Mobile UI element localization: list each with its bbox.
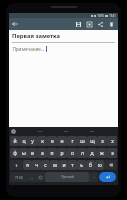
button[interactable]: Gboard menu [11, 129, 16, 134]
staticText: щ [90, 138, 95, 145]
button[interactable]: р [57, 148, 67, 158]
button[interactable]: ц [19, 136, 28, 146]
staticText: з [101, 138, 104, 145]
button[interactable]: я [23, 160, 32, 170]
button[interactable]: б [86, 160, 95, 170]
button[interactable]: . [89, 172, 98, 182]
button[interactable]: ш [77, 136, 87, 146]
staticText: а [41, 150, 44, 157]
staticText: ш [80, 138, 85, 145]
staticText: н [60, 138, 64, 145]
button[interactable]: Enter [99, 172, 116, 182]
staticText: 19:41 [109, 14, 116, 18]
button[interactable]: ы [19, 148, 28, 158]
button[interactable]: Примечание... [12, 46, 115, 52]
staticText: э [111, 150, 114, 157]
button[interactable]: Save as [84, 19, 95, 30]
staticText: Русский [61, 175, 74, 179]
button[interactable]: Shift [10, 160, 23, 170]
staticText: е [51, 138, 54, 145]
button[interactable]: Emoji [36, 172, 45, 182]
staticText: г [71, 138, 74, 145]
staticText: к [41, 138, 44, 145]
button[interactable]: г [67, 136, 77, 146]
staticText: ы [22, 150, 26, 157]
staticText: п [50, 150, 54, 157]
button[interactable]: Русский [45, 172, 89, 182]
button[interactable]: Save [73, 19, 84, 30]
button[interactable]: а [37, 148, 47, 158]
button[interactable]: з [97, 136, 107, 146]
button[interactable]: н [57, 136, 67, 146]
button[interactable]: д [87, 148, 97, 158]
button[interactable]: о [67, 148, 77, 158]
button[interactable]: , [27, 172, 36, 182]
staticText: ю [98, 162, 102, 169]
staticText: р [60, 150, 64, 157]
button[interactable]: щ [87, 136, 97, 146]
staticText: й [13, 138, 17, 145]
staticText: о [71, 150, 74, 157]
button[interactable]: у [28, 136, 37, 146]
staticText: ь [80, 162, 83, 169]
staticText: Первая заметка [12, 32, 60, 40]
staticText: ч [35, 162, 38, 169]
button[interactable]: в [28, 148, 37, 158]
staticText: и [62, 162, 66, 169]
button[interactable]: э [107, 148, 117, 158]
button[interactable]: Backspace [104, 160, 117, 170]
staticText: х [111, 138, 114, 145]
button[interactable]: ?123 [10, 172, 27, 182]
staticText: 100% [97, 14, 104, 18]
staticText: л [81, 150, 84, 157]
button[interactable]: м [50, 160, 59, 170]
staticText: ?123 [15, 175, 23, 180]
button[interactable]: т [68, 160, 77, 170]
button[interactable]: Back [10, 19, 20, 29]
staticText: Примечание... [12, 46, 45, 52]
button[interactable]: ч [32, 160, 41, 170]
staticText: т [71, 162, 74, 169]
staticText: м [53, 162, 57, 169]
staticText: в [31, 150, 34, 157]
button[interactable]: к [37, 136, 47, 146]
button[interactable]: Первая заметка [12, 32, 115, 40]
staticText: ц [22, 138, 26, 145]
staticText: я [26, 162, 29, 169]
button[interactable]: п [47, 148, 57, 158]
staticText: , [31, 174, 33, 180]
button[interactable]: ь [77, 160, 86, 170]
button[interactable]: с [41, 160, 50, 170]
staticText: ж [100, 150, 104, 157]
staticText: . [93, 174, 95, 180]
button[interactable]: х [107, 136, 117, 146]
button[interactable]: л [77, 148, 87, 158]
button[interactable]: ж [97, 148, 107, 158]
button[interactable]: и [59, 160, 68, 170]
staticText: б [89, 162, 92, 169]
staticText: у [31, 138, 34, 145]
button[interactable]: Delete [106, 19, 117, 30]
button[interactable]: ю [95, 160, 104, 170]
button[interactable]: Share [95, 19, 106, 30]
button[interactable]: ф [10, 148, 19, 158]
button[interactable]: е [47, 136, 57, 146]
staticText: с [44, 162, 47, 169]
staticText: ф [13, 150, 17, 157]
button[interactable]: й [10, 136, 19, 146]
staticText: д [90, 150, 94, 157]
